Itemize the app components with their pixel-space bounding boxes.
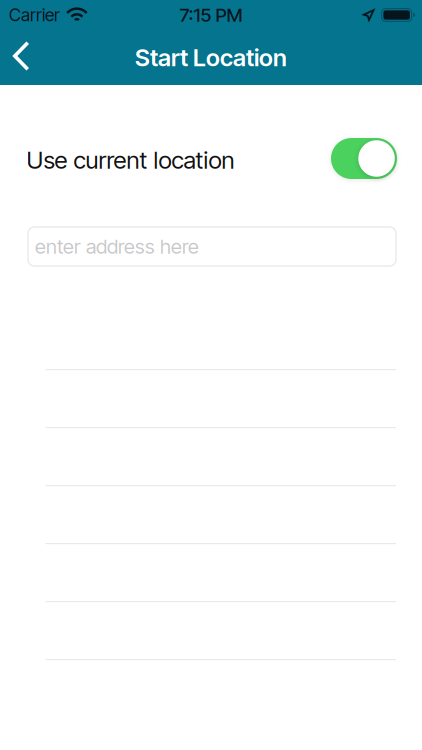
staticText: 7:15 PM	[179, 4, 242, 26]
staticText: enter address here	[35, 234, 199, 259]
staticText: Start Location	[135, 43, 287, 72]
button[interactable]: Use current location	[331, 138, 397, 179]
staticText: Carrier	[9, 4, 60, 25]
staticText: Use current location	[26, 145, 234, 174]
button[interactable]: Back	[0, 30, 46, 85]
